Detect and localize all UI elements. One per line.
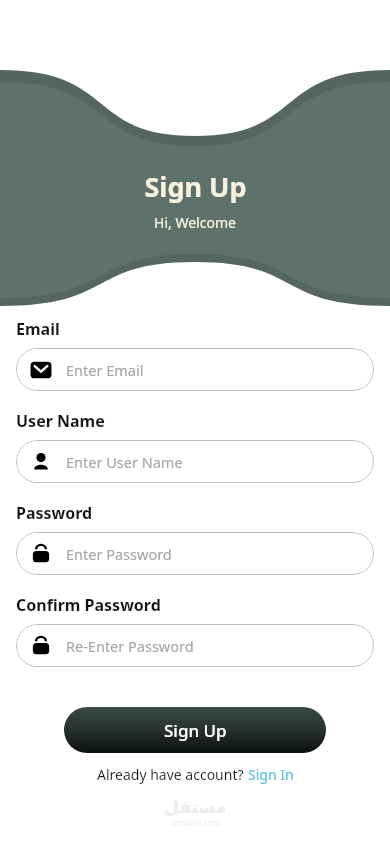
button[interactable]: Enter Password bbox=[16, 532, 374, 575]
staticText: Email bbox=[16, 318, 60, 340]
staticText: mostaql.com bbox=[171, 817, 220, 828]
button[interactable]: Sign Up bbox=[64, 707, 326, 753]
staticText: Confirm Password bbox=[16, 594, 161, 616]
staticText: Hi, Welcome bbox=[154, 213, 236, 232]
button[interactable]: Enter User Name bbox=[16, 440, 374, 483]
staticText: Password bbox=[16, 502, 93, 524]
staticText: Enter User Name bbox=[66, 452, 183, 472]
staticText: Re-Enter Password bbox=[66, 636, 194, 656]
staticText: User Name bbox=[16, 410, 105, 432]
staticText: Enter Email bbox=[66, 360, 144, 380]
button[interactable]: Enter Email bbox=[16, 348, 374, 391]
staticText: Enter Password bbox=[66, 544, 172, 564]
staticText: Sign In bbox=[248, 765, 294, 784]
button[interactable]: Re-Enter Password bbox=[16, 624, 374, 667]
staticText: مستقل bbox=[164, 797, 227, 817]
staticText: Sign Up bbox=[144, 168, 247, 205]
staticText: Sign Up bbox=[164, 719, 227, 742]
staticText: Already have account? bbox=[97, 765, 248, 784]
button[interactable]: Sign In bbox=[248, 765, 294, 784]
